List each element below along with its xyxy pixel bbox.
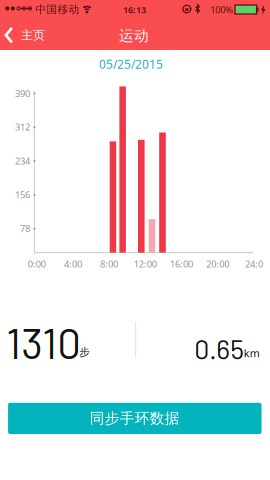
staticText: 步	[79, 346, 90, 359]
staticText: 16:13	[123, 3, 146, 16]
staticText: 0.65	[194, 332, 244, 364]
staticText: km	[244, 346, 260, 360]
staticText: 中国移动	[35, 3, 79, 16]
staticText: 78	[20, 222, 30, 235]
staticText: 20:00	[206, 258, 229, 270]
staticText: 234	[15, 155, 30, 167]
staticText: 100%	[210, 3, 233, 16]
staticText: 1310	[6, 317, 81, 367]
staticText: 16:00	[170, 258, 193, 270]
staticText: 0:00	[28, 258, 46, 270]
staticText: 05/25/2015	[99, 56, 163, 72]
staticText: 主页	[21, 28, 45, 42]
staticText: 运动	[119, 27, 149, 45]
staticText: 同步手环数据	[90, 409, 180, 427]
staticText: 12:00	[134, 258, 157, 270]
staticText: 390	[15, 87, 30, 99]
staticText: 4:00	[64, 258, 82, 270]
button[interactable]: 返回主页	[3, 20, 45, 50]
button[interactable]: 同步手环数据	[8, 403, 262, 434]
staticText: 8:00	[100, 258, 118, 270]
staticText: 312	[15, 121, 30, 133]
staticText: 156	[15, 188, 30, 201]
staticText: 24:0	[245, 258, 263, 270]
